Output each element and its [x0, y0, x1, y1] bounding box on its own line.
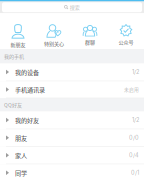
staticText: 特别关心: [44, 40, 64, 47]
staticText: 未启用: [124, 86, 139, 93]
staticText: 我的好友: [15, 116, 39, 124]
button[interactable]: 朋友: [0, 129, 144, 147]
staticText: 同学: [15, 168, 27, 177]
button[interactable]: 特别关心: [36, 13, 72, 49]
staticText: QQ好友: [4, 101, 22, 108]
staticText: 搜索: [70, 4, 80, 11]
button[interactable]: 搜索: [0, 1, 144, 12]
staticText: 朋友: [15, 133, 27, 142]
staticText: 公众号: [118, 38, 133, 45]
staticText: 家人: [15, 151, 27, 160]
staticText: 新朋友: [10, 41, 25, 48]
button[interactable]: 家人: [0, 147, 144, 164]
staticText: 我的手机: [4, 53, 24, 60]
staticText: 手机通讯录: [15, 85, 45, 94]
staticText: 1/2: [132, 117, 139, 123]
staticText: 0/4: [129, 152, 139, 159]
button[interactable]: 公众号: [108, 13, 144, 49]
staticText: 0/1: [131, 169, 139, 176]
button[interactable]: 同学: [0, 164, 144, 180]
staticText: 我的设备: [15, 68, 39, 76]
button[interactable]: 手机通讯录: [0, 81, 144, 98]
staticText: 1/2: [132, 69, 139, 75]
staticText: 0/0: [129, 134, 139, 141]
button[interactable]: 新朋友: [0, 13, 36, 49]
staticText: 群聊: [85, 38, 95, 45]
button[interactable]: 我的设备: [0, 63, 144, 81]
button[interactable]: 群聊: [72, 13, 108, 49]
button[interactable]: 我的好友: [0, 111, 144, 129]
